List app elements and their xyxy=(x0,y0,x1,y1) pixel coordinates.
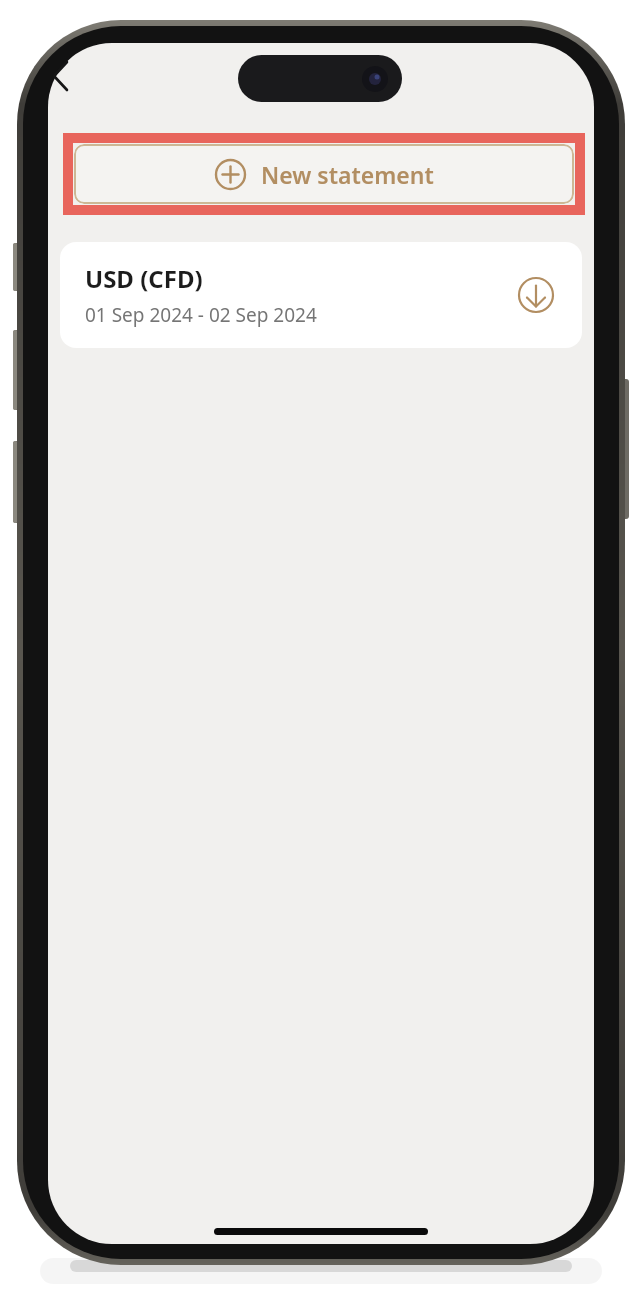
button[interactable]: New statement xyxy=(74,144,574,204)
staticText: New statement xyxy=(261,159,434,190)
staticText: 01 Sep 2024 - 02 Sep 2024 xyxy=(85,302,317,328)
staticText: USD (CFD) xyxy=(85,262,203,295)
button[interactable]: USD (CFD) xyxy=(60,242,582,348)
button[interactable] xyxy=(517,276,555,314)
